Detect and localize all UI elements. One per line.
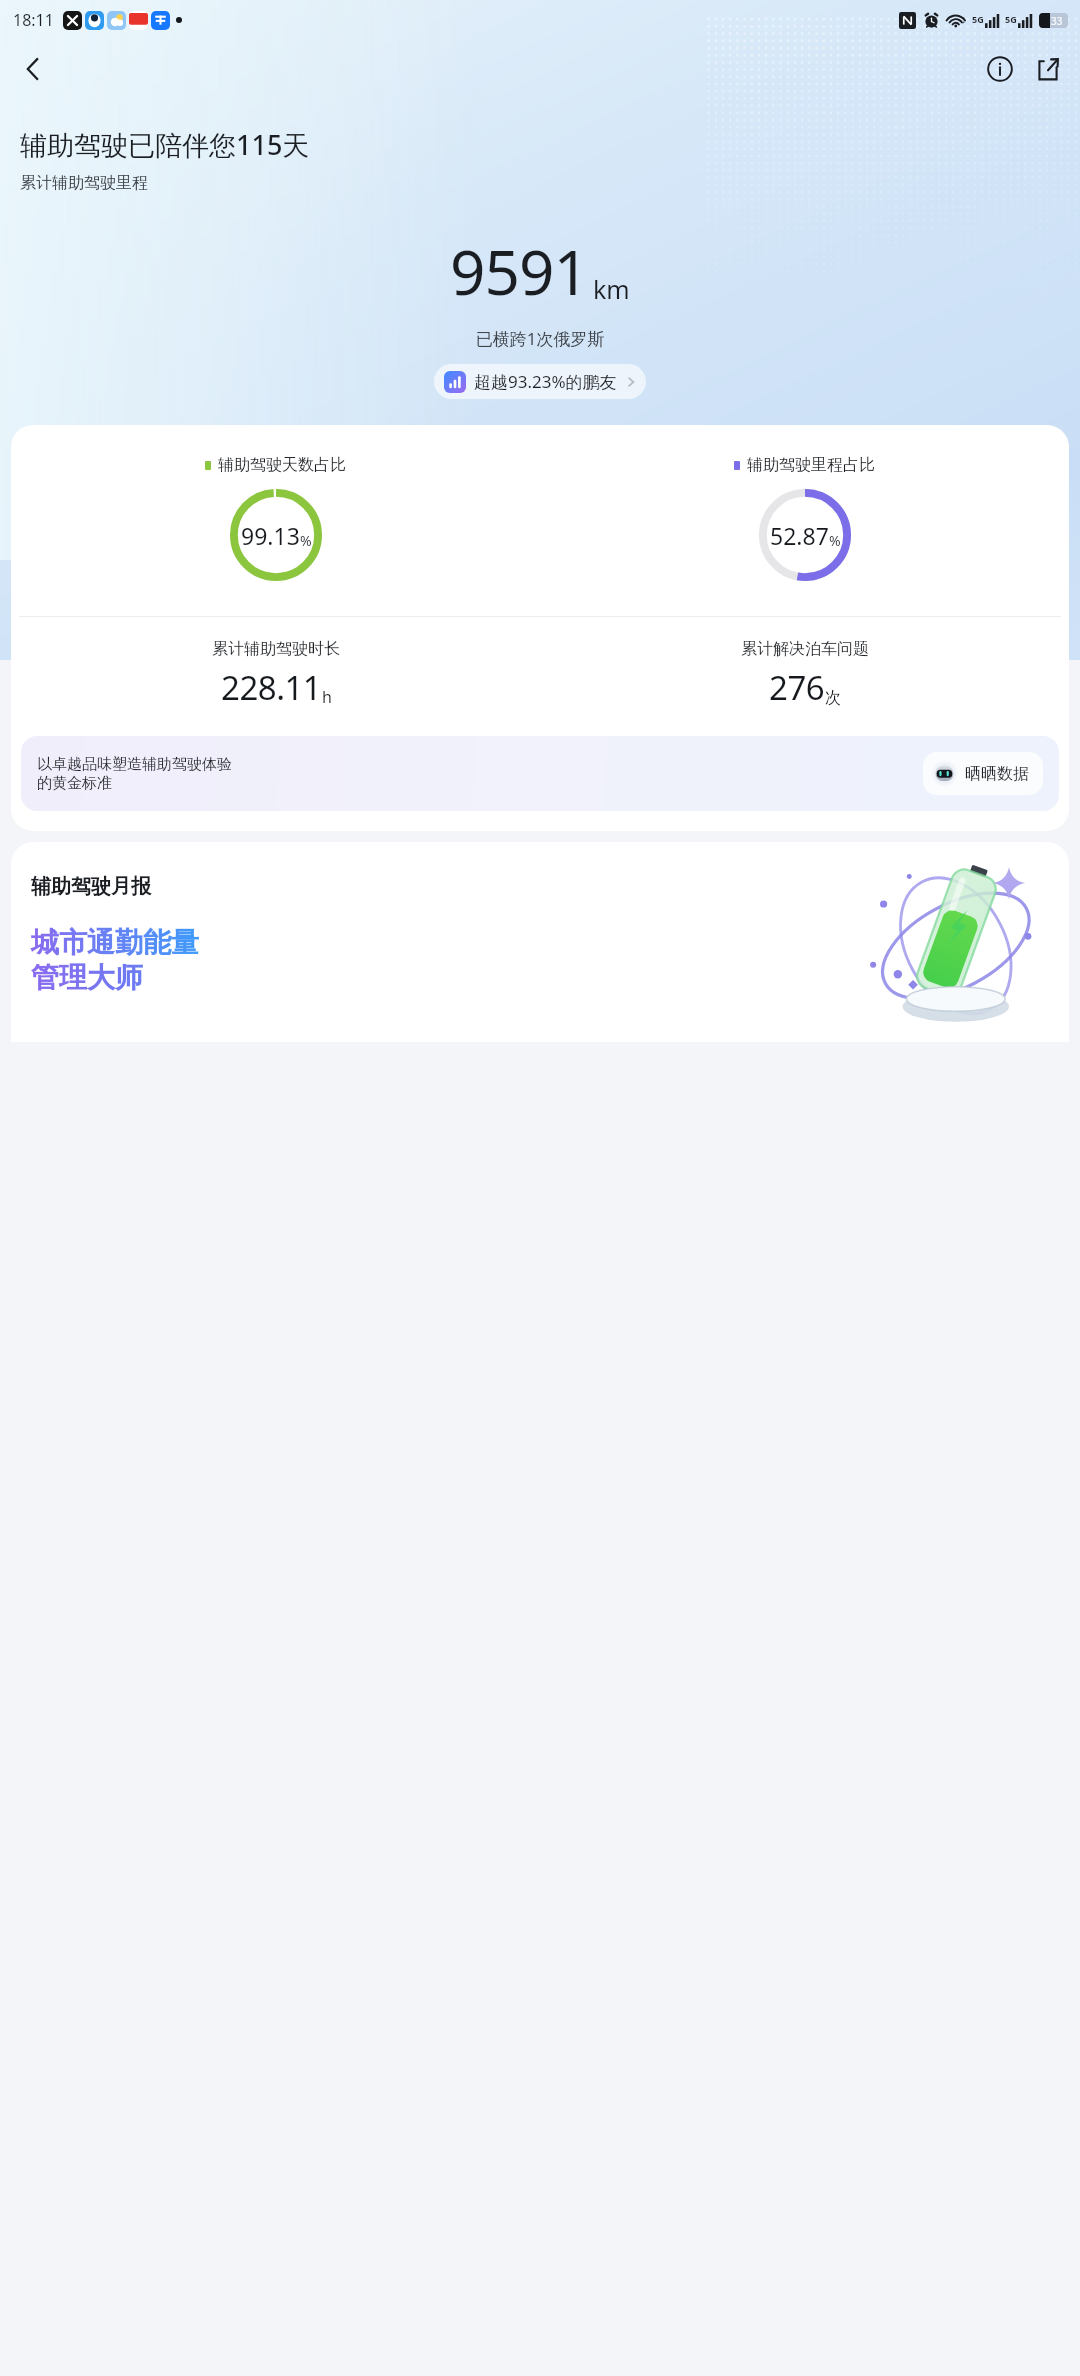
staticText: 已横跨1次俄罗斯: [0, 327, 1080, 350]
staticText: 辅助驾驶里程占比: [747, 455, 875, 475]
staticText: 辅助驾驶月报: [31, 874, 151, 899]
staticText: 管理大师: [31, 960, 143, 995]
staticText: 9591: [450, 229, 588, 313]
button[interactable]: Back: [9, 45, 57, 93]
staticText: 辅助驾驶已陪伴您115天: [20, 126, 310, 163]
staticText: 次: [825, 688, 841, 708]
button[interactable]: Information: [978, 47, 1022, 91]
staticText: 52.87: [770, 520, 829, 551]
staticText: 累计辅助驾驶时长: [212, 639, 340, 659]
staticText: 18:11: [13, 9, 54, 31]
staticText: 33: [1051, 14, 1063, 28]
staticText: 累计解决泊车问题: [741, 639, 869, 659]
staticText: 5G: [972, 13, 984, 25]
staticText: 5G: [1005, 13, 1017, 25]
staticText: 的黄金标准: [37, 774, 112, 793]
staticText: 累计辅助驾驶里程: [20, 173, 148, 193]
staticText: 以卓越品味塑造辅助驾驶体验: [37, 755, 232, 774]
staticText: 228.11: [221, 665, 322, 710]
staticText: 辅助驾驶天数占比: [218, 455, 346, 475]
staticText: 超越93.23%的鹏友: [474, 370, 617, 393]
staticText: h: [322, 686, 332, 708]
staticText: km: [593, 272, 630, 306]
staticText: 276: [769, 665, 825, 710]
button[interactable]: 超越93.23%的鹏友: [434, 364, 646, 399]
staticText: 99.13: [241, 520, 300, 551]
staticText: %: [300, 531, 312, 550]
staticText: %: [829, 531, 841, 550]
staticText: 城市通勤能量: [31, 925, 199, 960]
button[interactable]: 辅助驾驶月报: [11, 842, 1069, 1042]
button[interactable]: Share: [1026, 47, 1070, 91]
button[interactable]: 晒晒数据: [923, 752, 1043, 795]
staticText: 晒晒数据: [965, 764, 1029, 784]
